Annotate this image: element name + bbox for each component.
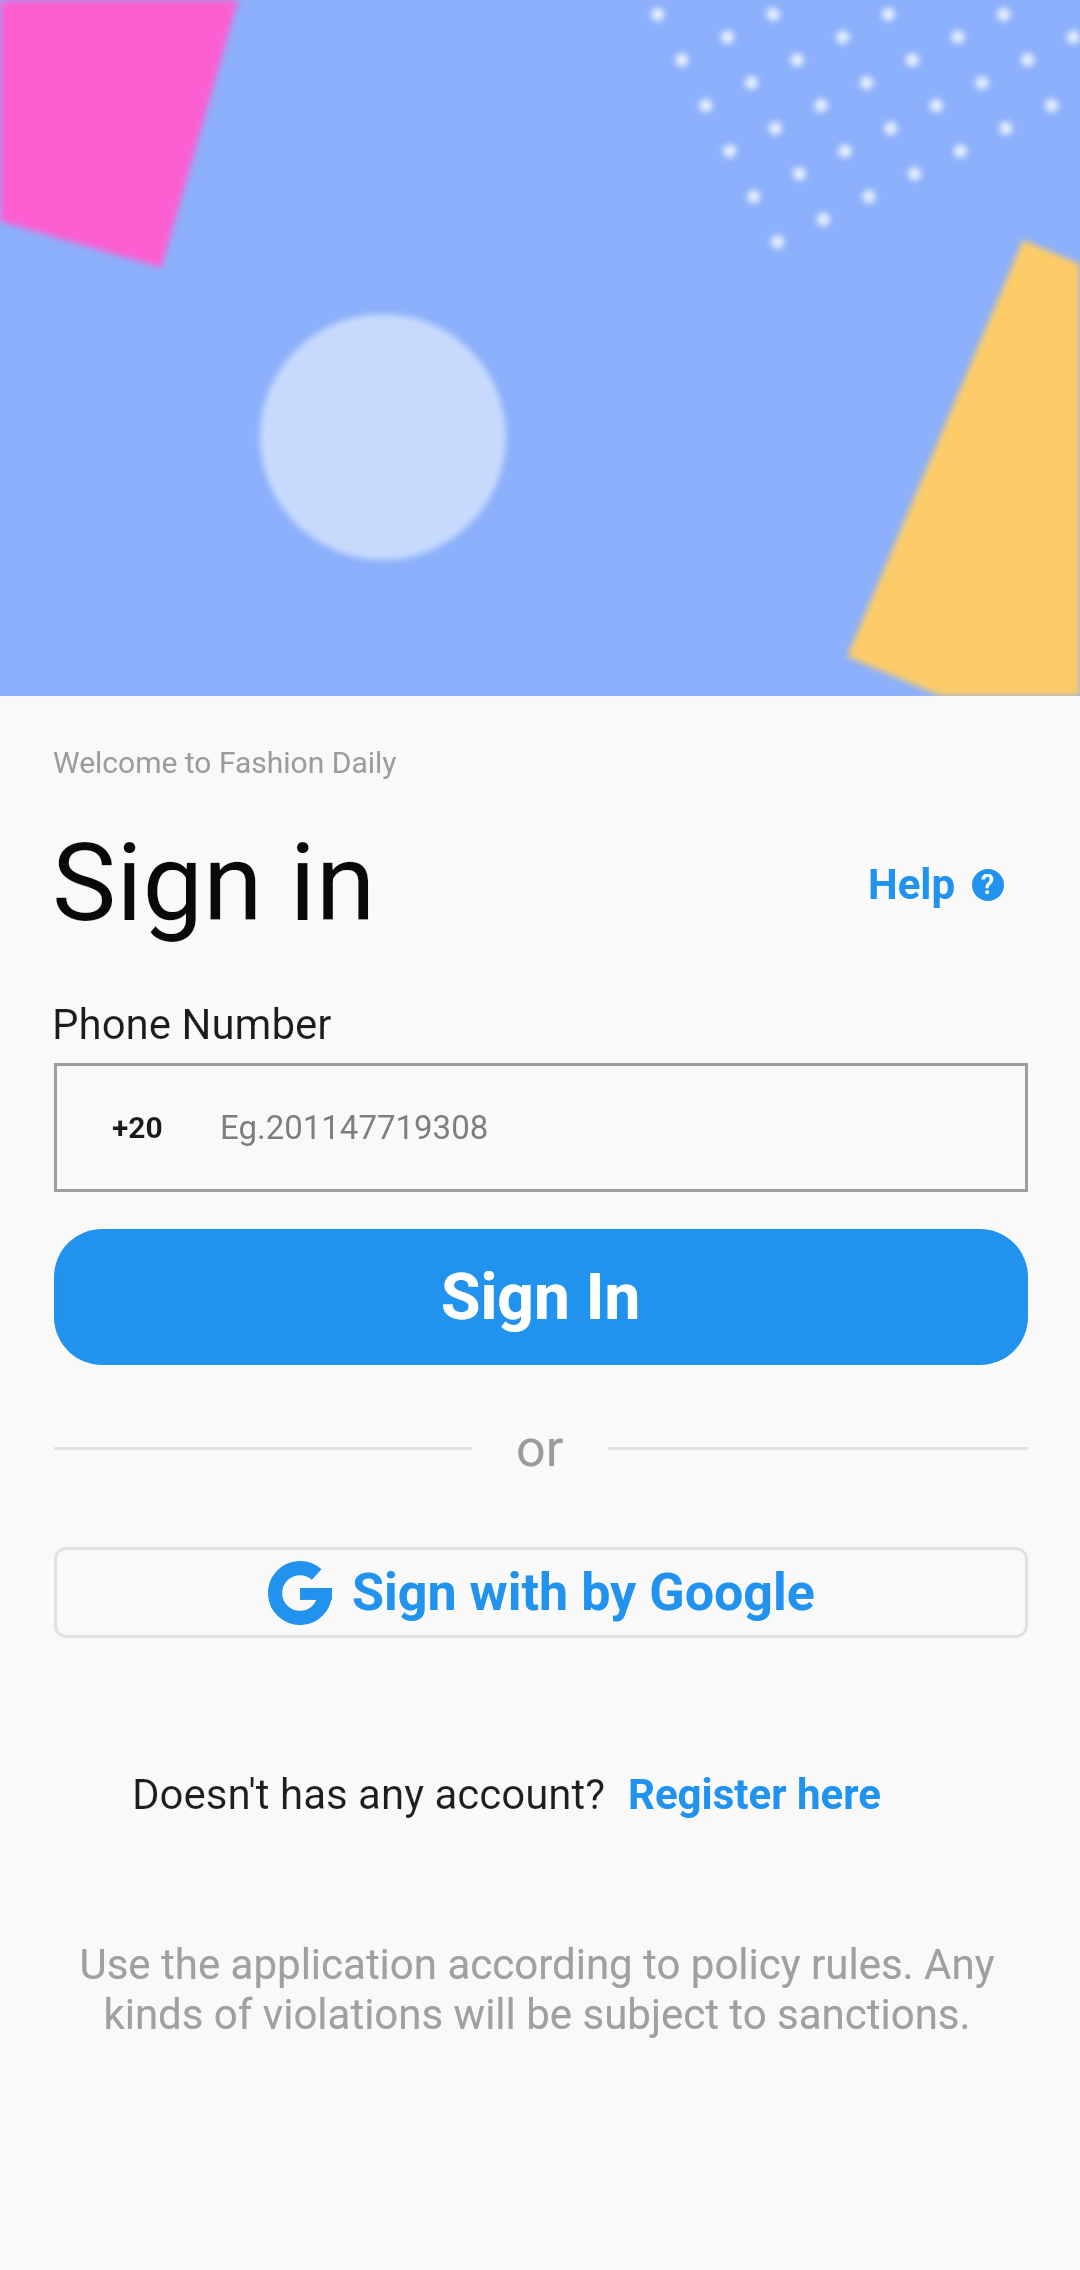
staticText: Sign In [441,1260,641,1335]
staticText: +20 [112,1110,163,1145]
staticText: Use the application according to policy … [57,1940,1017,2039]
staticText: Help [868,860,956,909]
staticText: Welcome to Fashion Daily [53,745,397,780]
staticText: Sign with by Google [352,1562,815,1623]
button[interactable]: +20 [54,1063,1028,1192]
staticText: ? [981,869,995,901]
other: Help [972,869,1004,901]
staticText: Sign in [52,820,376,947]
button[interactable]: Help [868,860,1004,909]
staticText: or [516,1418,564,1479]
button[interactable]: Sign with by Google [54,1547,1028,1638]
staticText: Phone Number [52,1000,332,1049]
button[interactable]: Register here [628,1770,881,1819]
staticText: Doesn't has any account? [132,1770,606,1819]
button[interactable]: Sign In [54,1229,1028,1365]
staticText: Eg.201147719308 [220,1108,489,1147]
